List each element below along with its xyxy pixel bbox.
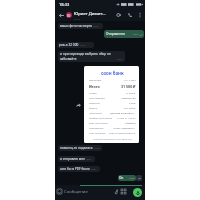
staticText: Анная Андреевна С.	[113, 127, 136, 130]
staticText: Сообщение	[64, 189, 88, 195]
button[interactable]: Ок	[118, 175, 136, 181]
staticText: Итого	[89, 84, 100, 89]
staticText: Банк получателя	[89, 122, 108, 125]
staticText: 18:12	[93, 25, 99, 28]
staticText: што бы в PDF было	[60, 167, 90, 171]
staticText: Рос. рубль	[124, 107, 136, 110]
button[interactable]: и при переводе выбрать сбор не забывайте	[58, 51, 125, 62]
button[interactable]: Attach file	[114, 189, 119, 194]
staticText: Служба поддержки:	[95, 142, 115, 143]
staticText: 18:30	[94, 147, 100, 150]
button[interactable]: што бы в PDF было	[58, 166, 100, 172]
staticText: Валюта	[89, 107, 98, 110]
staticText: 18:33	[59, 2, 70, 7]
staticText: Юрист Димит…	[74, 11, 106, 17]
button[interactable]: Отправлено	[104, 30, 144, 38]
button[interactable]: наконец-то подалась	[58, 145, 102, 151]
staticText: Получатель	[89, 112, 103, 115]
button[interactable]: ров-о 32 000	[57, 42, 94, 48]
button[interactable]: Video call	[115, 11, 123, 19]
staticText: ров-о 32 000	[59, 43, 79, 47]
staticText: Телефон получателя	[89, 117, 112, 120]
staticText: 40817810099910004312	[109, 132, 136, 135]
staticText: Отправитель	[89, 127, 104, 130]
staticText: 18:12	[133, 33, 139, 36]
staticText: 18:14	[117, 58, 123, 61]
staticText: Дмитрий Яковлевич Т.	[110, 112, 136, 115]
staticText: Тип операции	[89, 97, 105, 100]
staticText: Ок	[119, 176, 124, 180]
button[interactable]: Record voice message	[133, 188, 142, 197]
staticText: 18:11	[74, 17, 81, 20]
staticText: Перевод СБП	[121, 97, 136, 100]
staticText: Отправлено	[106, 32, 125, 36]
staticText: +7 903 111-22-33	[117, 117, 136, 120]
staticText: наконец-то подалась	[60, 146, 93, 150]
staticText: 0,00 ₽	[129, 102, 136, 105]
staticText: 18:13	[80, 44, 86, 47]
staticText: ваши фото паспорта	[60, 24, 92, 28]
staticText: 31 500 ₽	[126, 92, 136, 95]
button[interactable]: ваши фото паспорта	[58, 23, 103, 29]
staticText: Квитанция	[89, 79, 102, 82]
staticText: Ю	[67, 13, 71, 18]
button[interactable]: More options	[137, 12, 143, 18]
staticText: 18:32	[129, 177, 135, 180]
staticText: Комиссия	[89, 102, 100, 105]
staticText: Счёт списания	[89, 132, 106, 135]
button[interactable]: Scan QR code	[121, 189, 126, 194]
button[interactable]: озон банк	[84, 66, 139, 143]
staticText: Сбербанк	[125, 122, 136, 125]
staticText: 18:31	[91, 168, 97, 171]
button[interactable]: Scroll to bottom	[136, 175, 142, 181]
staticText: и при переводе выбрать сбор не забывайте	[60, 52, 116, 61]
staticText: Операция совершена в Ozon Банке (АО).	[93, 138, 133, 141]
staticText: и отправлю мне	[60, 157, 85, 161]
staticText: озон банк	[101, 70, 124, 76]
button[interactable]: и отправлю мне	[58, 156, 95, 162]
button[interactable]: Call	[126, 11, 134, 19]
staticText: 18:31	[86, 158, 92, 161]
staticText: 31 500 ₽	[121, 84, 136, 89]
button[interactable]: Back	[57, 11, 65, 19]
button[interactable]: Stickers and emoji	[57, 189, 62, 194]
staticText: Сумма	[89, 92, 97, 95]
staticText: 12.11.2024	[124, 79, 136, 82]
